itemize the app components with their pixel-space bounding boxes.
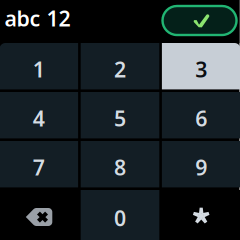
button[interactable]: 4 <box>0 92 78 138</box>
button[interactable]: 9 <box>162 141 240 187</box>
button[interactable]: Asterisk <box>162 190 240 240</box>
button[interactable]: 2 <box>81 43 159 89</box>
staticText: 1 <box>33 55 45 83</box>
staticText: 0 <box>114 204 126 232</box>
button[interactable]: Delete <box>0 190 78 240</box>
button[interactable]: Done <box>162 6 236 35</box>
staticText: 3 <box>195 55 207 83</box>
staticText: abc 12 <box>4 4 70 32</box>
button[interactable]: 8 <box>81 141 159 187</box>
button[interactable]: 7 <box>0 141 78 187</box>
staticText: 6 <box>195 104 207 132</box>
staticText: 4 <box>33 104 45 132</box>
staticText: 9 <box>195 153 207 181</box>
staticText: 7 <box>33 153 45 181</box>
staticText: 2 <box>114 55 126 83</box>
button[interactable]: 6 <box>162 92 240 138</box>
button[interactable]: 5 <box>81 92 159 138</box>
button[interactable]: 1 <box>0 43 78 89</box>
staticText: 8 <box>114 153 126 181</box>
button[interactable]: 3 <box>162 43 240 89</box>
staticText: 5 <box>114 104 126 132</box>
button[interactable]: 0 <box>81 190 159 240</box>
